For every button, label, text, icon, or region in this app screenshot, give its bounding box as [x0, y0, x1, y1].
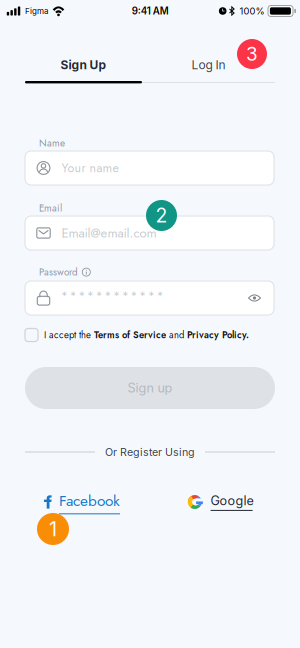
staticText: Google	[211, 493, 254, 508]
staticText: Sign up	[127, 380, 172, 396]
staticText: *	[122, 290, 128, 303]
button[interactable]: I accept the Terms of Service and Privac…	[25, 327, 275, 343]
staticText: *	[61, 290, 67, 303]
button[interactable]: Sign up	[25, 367, 275, 409]
button[interactable]: Facebook	[43, 492, 123, 512]
staticText: *	[157, 290, 163, 303]
staticText: 2	[155, 204, 167, 227]
staticText: 1	[49, 517, 57, 541]
staticText: *	[140, 290, 146, 303]
staticText: Facebook	[59, 490, 120, 512]
staticText: 100%	[239, 5, 264, 17]
staticText: *	[105, 290, 111, 303]
staticText: Or Register Using	[105, 445, 195, 458]
staticText: *	[148, 290, 154, 303]
staticText: 3	[246, 43, 258, 65]
staticText: *	[70, 290, 76, 303]
staticText: Log In	[191, 58, 225, 72]
staticText: Email	[39, 201, 62, 215]
button[interactable]: Log In	[142, 50, 275, 80]
staticText: Password	[39, 265, 78, 279]
staticText: *	[88, 290, 94, 303]
staticText: *	[114, 290, 120, 303]
staticText: 9:41 AM	[132, 5, 169, 17]
staticText: Sign Up	[60, 58, 106, 72]
staticText: *	[79, 290, 85, 303]
staticText: *	[96, 290, 102, 303]
button[interactable]: Google	[187, 492, 255, 512]
button[interactable]: Sign Up	[25, 50, 142, 80]
staticText: Email@email.com	[61, 224, 156, 242]
staticText: *	[131, 290, 137, 303]
staticText: Your name	[61, 159, 118, 177]
staticText: I accept the Terms of Service and Privac…	[44, 328, 249, 342]
staticText: Name	[39, 136, 65, 150]
staticText: Figma	[25, 6, 48, 16]
